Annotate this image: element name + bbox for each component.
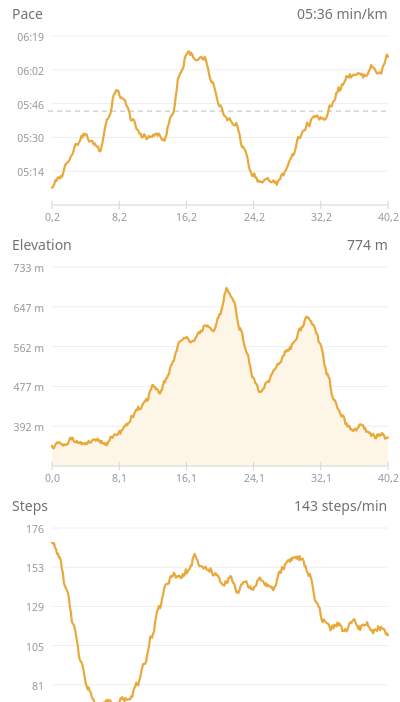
staticText: Steps xyxy=(12,496,48,515)
staticText: 05:36 min/km xyxy=(297,4,388,23)
staticText: 176 xyxy=(25,522,44,536)
staticText: 733 m xyxy=(13,261,44,275)
staticText: 40,2 xyxy=(378,210,399,224)
staticText: Pace xyxy=(12,4,43,23)
staticText: 24,1 xyxy=(244,471,265,485)
staticText: 105 xyxy=(25,640,44,654)
staticText: 8,2 xyxy=(112,210,127,224)
staticText: 16,1 xyxy=(176,471,197,485)
staticText: 06:02 xyxy=(17,64,44,78)
staticText: 32,2 xyxy=(311,210,332,224)
staticText: 0,2 xyxy=(45,210,60,224)
staticText: 0,0 xyxy=(45,471,60,485)
staticText: 477 m xyxy=(13,380,44,394)
other: Steps chart xyxy=(0,518,400,702)
staticText: 143 steps/min xyxy=(294,496,388,515)
staticText: 40,2 xyxy=(378,471,399,485)
staticText: 774 m xyxy=(347,235,388,254)
button[interactable]: Pace xyxy=(0,0,400,26)
staticText: 32,1 xyxy=(311,471,332,485)
staticText: 24,2 xyxy=(244,210,265,224)
staticText: 562 m xyxy=(13,341,44,355)
staticText: 05:30 xyxy=(17,131,44,145)
staticText: Elevation xyxy=(12,235,72,254)
button[interactable]: Steps xyxy=(0,492,400,518)
staticText: 129 xyxy=(25,600,44,614)
staticText: 647 m xyxy=(13,301,44,315)
other: Pace chart xyxy=(0,26,400,231)
staticText: 05:46 xyxy=(17,98,44,112)
staticText: 153 xyxy=(25,561,44,575)
staticText: 05:14 xyxy=(17,165,44,179)
staticText: 06:19 xyxy=(17,30,44,44)
other: Elevation chart xyxy=(0,257,400,492)
staticText: 16,2 xyxy=(176,210,197,224)
staticText: 8,1 xyxy=(112,471,127,485)
button[interactable]: Elevation xyxy=(0,231,400,257)
staticText: 392 m xyxy=(13,420,44,434)
staticText: 81 xyxy=(31,679,44,693)
